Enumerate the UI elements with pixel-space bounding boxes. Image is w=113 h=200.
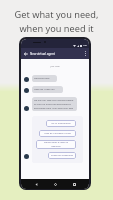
button[interactable]: We live can take your request before [32, 97, 77, 111]
button[interactable]: Show me something [48, 152, 76, 159]
staticText: Show me something [48, 154, 76, 157]
staticText: everything then I can assist you with [34, 107, 74, 110]
staticText: Just now [21, 65, 89, 68]
staticText: Welcome back Kara [34, 77, 55, 80]
button[interactable]: Welcome back Kara [32, 75, 57, 82]
button[interactable]: Back [23, 51, 29, 57]
staticText: 100 [83, 44, 87, 47]
staticText: question [36, 145, 76, 148]
staticText: How can I help you today? [34, 88, 61, 91]
button[interactable]: Back [32, 180, 40, 188]
staticText: How do I visualize a case [39, 132, 76, 135]
button[interactable]: My PI information [46, 120, 76, 127]
button[interactable]: How can I help you today? [32, 86, 63, 93]
button[interactable]: Home [51, 180, 59, 188]
staticText: New virtual agent [30, 52, 55, 56]
staticText: so click on those one everything is now [34, 103, 75, 106]
button[interactable]: How do I visualize a case [39, 130, 76, 137]
staticText: We live can take your request before [34, 99, 74, 102]
staticText: Please enter & login in [36, 141, 76, 144]
button[interactable]: Recents [70, 180, 78, 188]
staticText: Get what you need, when you need it [0, 8, 113, 34]
staticText: My PI information [46, 122, 76, 125]
button[interactable]: Please enter & login in [36, 140, 76, 149]
